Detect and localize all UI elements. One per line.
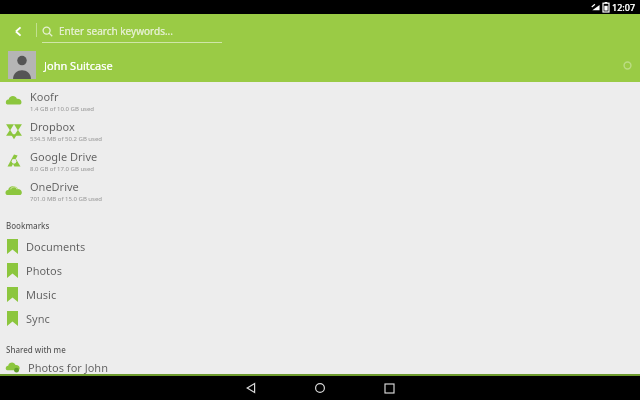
staticText: 534.5 MB of 50.2 GB used xyxy=(30,135,103,143)
button[interactable]: Back xyxy=(6,19,30,43)
staticText: Photos for John xyxy=(28,360,108,375)
button[interactable]: Dropbox xyxy=(0,116,640,146)
staticText: Sync xyxy=(26,311,50,326)
button[interactable]: Account settings xyxy=(618,56,636,74)
staticText: John Suitcase xyxy=(44,58,113,73)
button[interactable]: OneDrive xyxy=(0,176,640,206)
staticText: 701.0 MB of 15.0 GB used xyxy=(30,195,103,203)
button[interactable]: Documents xyxy=(0,234,640,258)
staticText: Music xyxy=(26,287,57,302)
staticText: Bookmarks xyxy=(6,220,50,231)
button[interactable]: Enter search keywords... xyxy=(42,18,220,44)
staticText: Photos xyxy=(26,263,63,278)
staticText: OneDrive xyxy=(30,179,79,194)
button[interactable]: Koofr xyxy=(0,86,640,116)
button[interactable]: Home xyxy=(307,376,333,400)
button[interactable]: Back xyxy=(238,376,264,400)
button[interactable]: John Suitcase xyxy=(0,48,640,82)
button[interactable]: Photos for John xyxy=(0,358,640,376)
staticText: 1.4 GB of 10.0 GB used xyxy=(30,105,95,113)
button[interactable]: Sync xyxy=(0,306,640,330)
staticText: 12:07 xyxy=(612,1,636,13)
staticText: Dropbox xyxy=(30,119,75,134)
staticText: Koofr xyxy=(30,89,59,104)
button[interactable]: Music xyxy=(0,282,640,306)
staticText: Google Drive xyxy=(30,149,98,164)
button[interactable]: Recent apps xyxy=(376,376,402,400)
staticText: 8.0 GB of 17.0 GB used xyxy=(30,165,95,173)
button[interactable]: Photos xyxy=(0,258,640,282)
button[interactable]: Google Drive xyxy=(0,146,640,176)
staticText: Shared with me xyxy=(6,344,66,355)
staticText: Enter search keywords... xyxy=(59,24,173,38)
staticText: Documents xyxy=(26,239,86,254)
